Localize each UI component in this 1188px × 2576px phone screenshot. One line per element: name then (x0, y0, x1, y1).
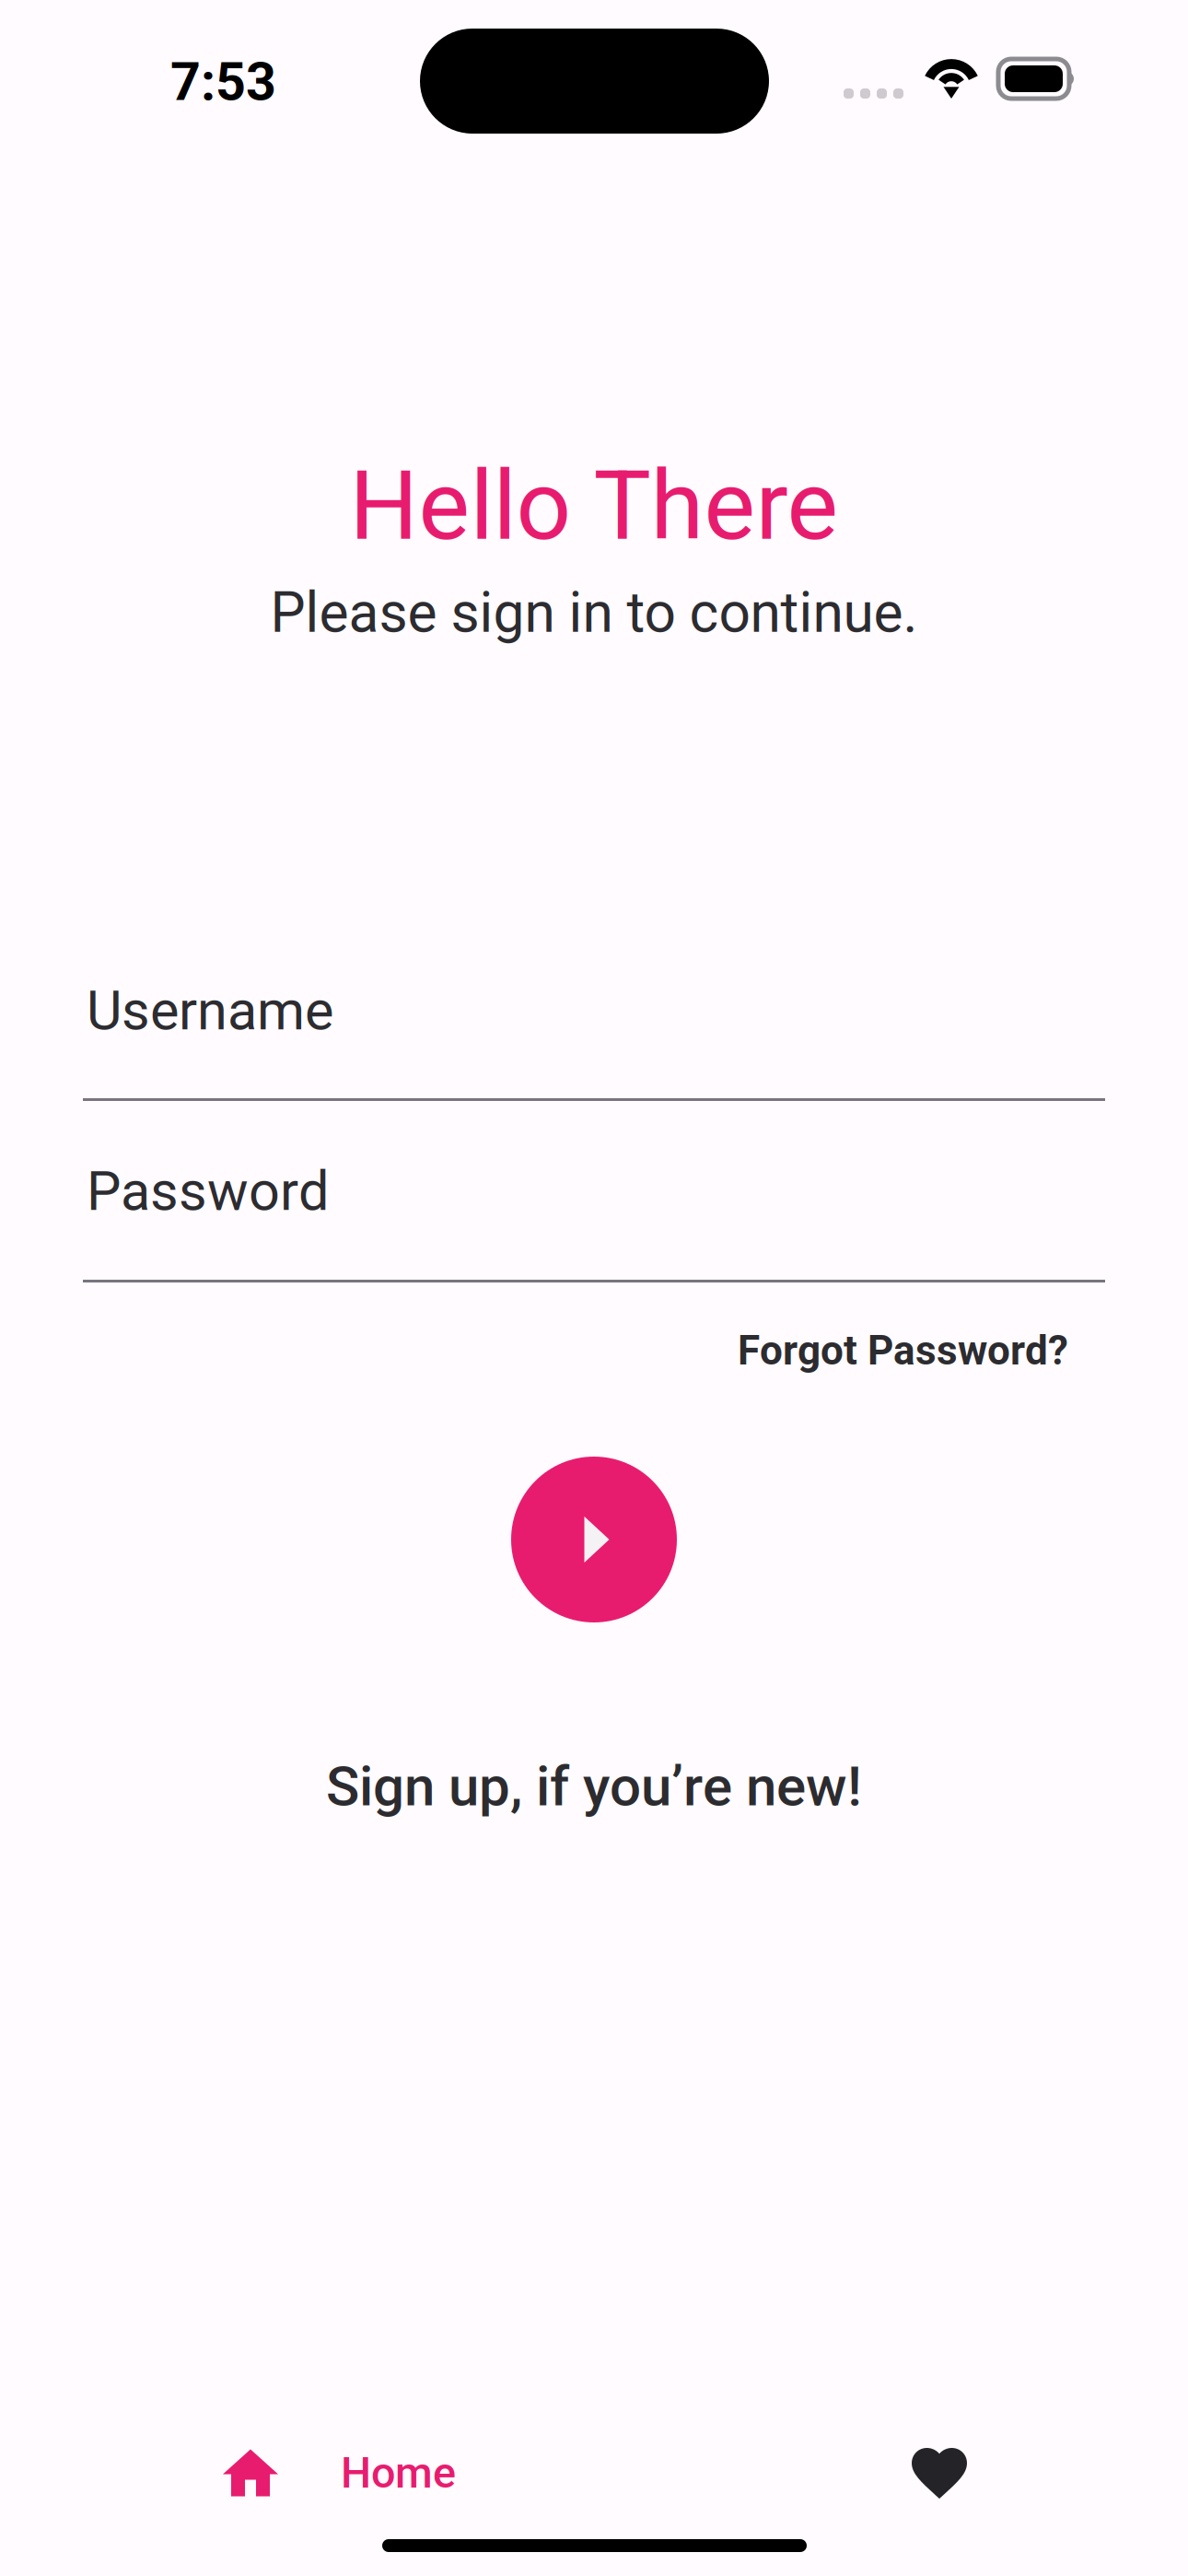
staticText: Password (87, 1159, 329, 1223)
staticText: Forgot Password? (738, 1327, 1068, 1374)
staticText: Hello There (349, 449, 839, 562)
button[interactable]: Favourites (912, 2448, 967, 2499)
staticText: Please sign in to continue. (270, 580, 918, 645)
staticText: Home (341, 2448, 456, 2498)
staticText: 7:53 (170, 51, 276, 113)
button[interactable]: Forgot Password? (681, 1306, 1068, 1395)
staticText: Username (87, 979, 333, 1043)
button[interactable]: Sign in (511, 1457, 677, 1622)
button[interactable]: Sign up, if you’re new! (0, 1742, 1188, 1831)
staticText: Sign up, if you’re new! (326, 1754, 862, 1819)
button[interactable]: Home (223, 2449, 488, 2497)
